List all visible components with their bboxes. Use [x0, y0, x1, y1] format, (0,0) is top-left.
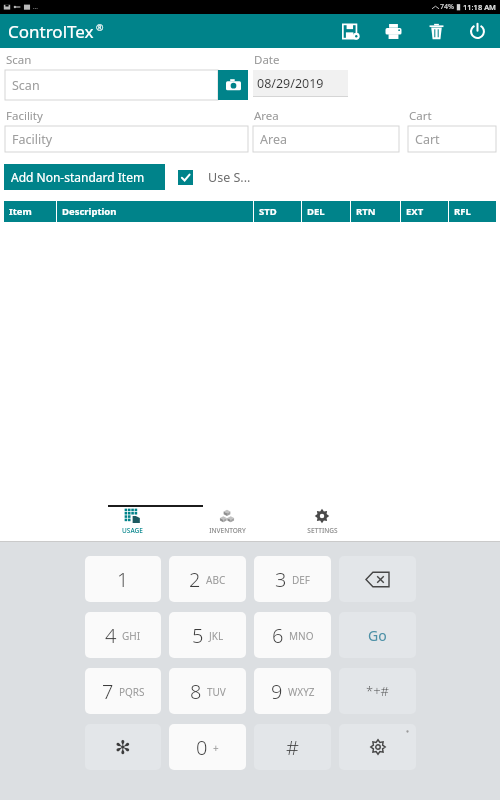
button[interactable]: Power — [464, 18, 490, 44]
staticText: + — [213, 741, 219, 755]
staticText: *+# — [366, 682, 389, 700]
button[interactable]: Delete — [423, 18, 449, 44]
button[interactable]: 2 — [169, 556, 246, 602]
button[interactable]: RFL — [449, 201, 496, 222]
staticText: 5 — [192, 622, 204, 649]
staticText: MNO — [289, 629, 314, 643]
button[interactable]: Item — [4, 201, 57, 222]
button[interactable]: STD — [254, 201, 302, 222]
staticText: 4 — [105, 622, 117, 649]
staticText: Use S... — [208, 169, 251, 186]
button[interactable]: 7 — [85, 668, 161, 714]
staticText: 74% — [440, 2, 454, 12]
staticText: GHI — [122, 629, 141, 643]
staticText: # — [286, 734, 299, 761]
button[interactable]: 6 — [254, 612, 331, 658]
staticText: ABC — [206, 573, 226, 587]
staticText: Cart — [409, 108, 432, 124]
staticText: ® — [96, 21, 104, 33]
button[interactable]: Backspace — [339, 556, 416, 602]
button[interactable]: Facility — [5, 126, 248, 152]
button[interactable]: 9 — [254, 668, 331, 714]
staticText: 7 — [102, 678, 114, 705]
staticText: Item — [9, 205, 32, 218]
button[interactable]: Go — [339, 612, 416, 658]
button[interactable]: 1 — [85, 556, 161, 602]
staticText: Scan — [6, 52, 32, 68]
staticText: Facility — [6, 108, 43, 124]
staticText: Description — [62, 205, 117, 218]
staticText: RFL — [454, 205, 471, 218]
staticText: INVENTORY — [209, 526, 246, 535]
staticText: Scan — [12, 77, 40, 94]
button[interactable]: Scan with camera — [218, 70, 248, 100]
staticText: USAGE — [122, 526, 143, 535]
staticText: PQRS — [119, 685, 145, 699]
button[interactable]: # — [254, 724, 331, 770]
staticText: ControlTex — [8, 20, 94, 43]
button[interactable]: *+# — [339, 668, 416, 714]
button[interactable]: 0 — [169, 724, 246, 770]
button[interactable]: Keyboard settings — [339, 724, 416, 770]
staticText: STD — [259, 205, 277, 218]
staticText: Add Non-standard Item — [11, 169, 145, 185]
staticText: EXT — [406, 205, 424, 218]
staticText: 08/29/2019 — [257, 75, 324, 92]
staticText: DEL — [307, 205, 325, 218]
staticText: 2 — [189, 566, 201, 593]
staticText: 6 — [272, 622, 284, 649]
button[interactable]: DEL — [302, 201, 351, 222]
button[interactable]: 3 — [254, 556, 331, 602]
button[interactable]: 8 — [169, 668, 246, 714]
button[interactable]: ✻ — [85, 724, 161, 770]
button[interactable]: Add Non-standard Item — [4, 164, 165, 190]
staticText: Cart — [415, 131, 440, 148]
staticText: Facility — [12, 131, 53, 148]
staticText: JKL — [209, 629, 224, 643]
button[interactable]: 4 — [85, 612, 161, 658]
staticText: DEF — [292, 573, 311, 587]
staticText: SETTINGS — [307, 526, 338, 535]
staticText: Area — [260, 131, 287, 148]
staticText: 3 — [275, 566, 287, 593]
staticText: RTN — [356, 205, 376, 218]
button[interactable]: Cart — [408, 126, 496, 152]
staticText: ✻ — [115, 736, 131, 758]
button[interactable]: Save — [337, 18, 363, 44]
button[interactable]: 08/29/2019 — [253, 70, 348, 96]
button[interactable]: 5 — [169, 612, 246, 658]
staticText: ... — [33, 3, 38, 11]
button[interactable]: Description — [57, 201, 254, 222]
staticText: Date — [254, 52, 280, 68]
staticText: WXYZ — [288, 685, 315, 699]
staticText: 9 — [271, 678, 283, 705]
button[interactable]: Area — [253, 126, 399, 152]
button[interactable]: EXT — [401, 201, 449, 222]
button[interactable]: Use S... — [178, 169, 251, 186]
staticText: Area — [254, 108, 279, 124]
staticText: 0 — [196, 734, 208, 761]
staticText: Go — [368, 626, 387, 645]
button[interactable]: SETTINGS — [298, 508, 346, 535]
staticText: TUV — [207, 685, 226, 699]
staticText: 8 — [190, 678, 202, 705]
button[interactable]: Scan — [5, 70, 218, 100]
button[interactable]: USAGE — [108, 508, 156, 535]
button[interactable]: Print — [380, 18, 406, 44]
staticText: 1 — [117, 566, 129, 593]
button[interactable]: INVENTORY — [203, 508, 251, 535]
button[interactable]: RTN — [351, 201, 401, 222]
staticText: 11:18 AM — [463, 2, 496, 12]
